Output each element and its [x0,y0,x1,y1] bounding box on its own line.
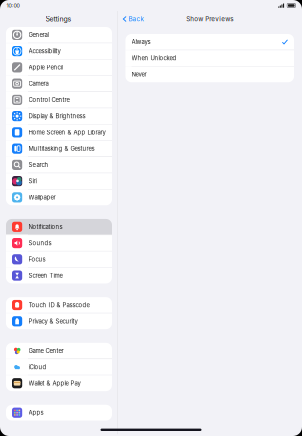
staticText: Focus [29,256,46,263]
staticText: Back [128,15,143,23]
staticText: Accessibility [29,47,61,55]
button[interactable]: Camera [6,76,112,92]
button[interactable]: Game Center [6,343,112,359]
staticText: Notifications [29,223,63,230]
button[interactable]: Touch ID & Passcode [6,297,112,313]
button[interactable]: Search [6,157,112,173]
staticText: General [29,31,49,38]
button[interactable]: Accessibility [6,43,112,59]
button[interactable]: Siri [6,173,112,189]
staticText: Settings [45,15,71,23]
button[interactable]: When Unlocked [125,50,294,66]
staticText: Wallpaper [29,194,56,201]
button[interactable]: Notifications [6,219,112,235]
staticText: Apps [29,409,44,416]
button[interactable]: General [6,27,112,43]
button[interactable]: Privacy & Security [6,313,112,329]
button[interactable]: Control Centre [6,92,112,108]
staticText: Always [131,38,150,45]
staticText: Multitasking & Gestures [29,145,95,152]
button[interactable]: Back [117,12,148,26]
staticText: Apple Pencil [29,64,63,71]
staticText: Screen Time [29,272,63,279]
button[interactable]: Display & Brightness [6,108,112,124]
staticText: Wallet & Apple Pay [29,380,81,387]
staticText: Touch ID & Passcode [29,301,90,309]
button[interactable]: Multitasking & Gestures [6,141,112,157]
staticText: Search [29,161,49,168]
button[interactable]: Focus [6,251,112,267]
button[interactable]: Apps [6,405,112,421]
button[interactable]: Always [125,34,294,50]
staticText: Show Previews [186,15,233,23]
staticText: Game Center [29,347,64,354]
staticText: When Unlocked [131,54,176,62]
staticText: Sounds [29,239,52,247]
staticText: Control Centre [29,96,70,103]
button[interactable]: Screen Time [6,268,112,283]
staticText: Home Screen & App Library [29,129,106,136]
button[interactable]: Home Screen & App Library [6,124,112,140]
staticText: Siri [29,177,37,185]
button[interactable]: Wallpaper [6,189,112,205]
button[interactable]: Apple Pencil [6,59,112,75]
button[interactable]: Wallet & Apple Pay [6,375,112,391]
staticText: 10:00 [6,2,19,9]
button[interactable]: Never [125,66,294,82]
staticText: Display & Brightness [29,112,86,120]
staticText: Never [131,71,146,78]
button[interactable]: Sounds [6,235,112,251]
staticText: Privacy & Security [29,318,78,325]
staticText: Camera [29,80,49,87]
button[interactable]: iCloud [6,359,112,375]
staticText: iCloud [29,363,47,371]
